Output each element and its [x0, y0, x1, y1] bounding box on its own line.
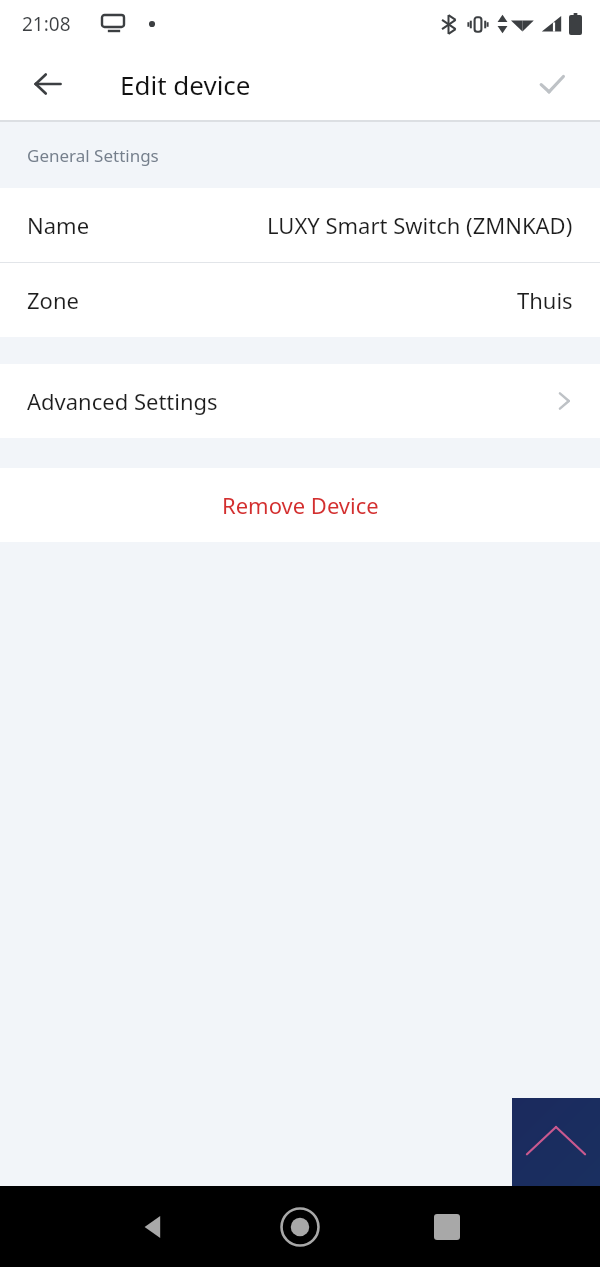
button[interactable]: Advanced Settings: [0, 364, 600, 438]
button[interactable]: Confirm: [526, 58, 578, 110]
button[interactable]: Remove Device: [0, 468, 600, 542]
button[interactable]: Zone: [0, 263, 600, 337]
staticText: 21:08: [22, 11, 71, 37]
button[interactable]: Back: [22, 58, 74, 110]
staticText: Advanced Settings: [27, 386, 218, 416]
staticText: Zone: [27, 285, 79, 315]
staticText: LUXY Smart Switch (ZMNKAD): [267, 210, 573, 240]
button[interactable]: Name: [0, 188, 600, 262]
button[interactable]: Back: [122, 1196, 184, 1258]
button[interactable]: Overlay widget: [512, 1098, 600, 1186]
button[interactable]: Home: [269, 1196, 331, 1258]
staticText: Name: [27, 210, 90, 240]
staticText: Edit device: [120, 67, 251, 102]
staticText: Remove Device: [222, 490, 379, 520]
staticText: Thuis: [517, 285, 573, 315]
button[interactable]: Recent apps: [416, 1196, 478, 1258]
staticText: General Settings: [27, 144, 159, 167]
